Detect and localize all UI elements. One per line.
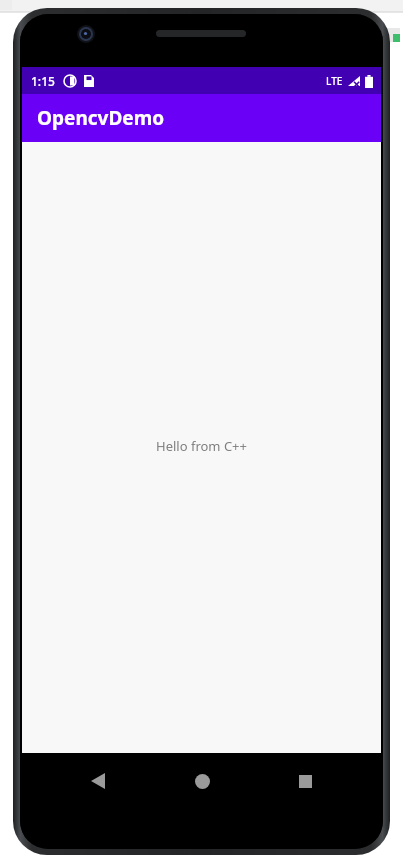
staticText: Hello from C++ [156, 437, 247, 455]
button[interactable]: Home [174, 766, 230, 796]
staticText: 1:15 [31, 73, 55, 89]
staticText: OpencvDemo [37, 105, 165, 131]
button[interactable]: Recent apps [277, 766, 333, 796]
button[interactable]: Back [70, 766, 126, 796]
staticText: LTE [326, 74, 343, 88]
